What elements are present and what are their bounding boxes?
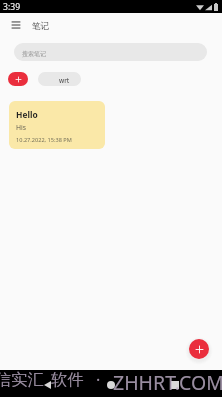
button[interactable]: Add tag	[8, 72, 28, 86]
staticText: wrt	[59, 76, 70, 85]
staticText: ZHHRT.COM	[113, 369, 222, 396]
button[interactable]: 搜索笔记	[14, 43, 207, 61]
staticText: 软件	[51, 369, 84, 389]
staticText: ·	[96, 369, 101, 391]
button[interactable]: Recents	[161, 374, 189, 396]
button[interactable]: wrt	[38, 72, 81, 86]
staticText: 笔记	[32, 21, 50, 32]
staticText: 信实汇	[0, 369, 44, 389]
staticText: His	[16, 123, 27, 132]
staticText: Hello	[16, 109, 38, 120]
button[interactable]: Menu	[6, 15, 26, 35]
staticText: 10.27.2022, 15:38 PM	[16, 136, 72, 144]
button[interactable]: Hello	[9, 101, 105, 149]
staticText: 搜索笔记	[22, 50, 46, 58]
button[interactable]: Back	[33, 374, 61, 396]
button[interactable]: Home	[97, 374, 125, 396]
staticText: 3:39	[3, 1, 21, 13]
button[interactable]: Add note	[189, 339, 209, 359]
